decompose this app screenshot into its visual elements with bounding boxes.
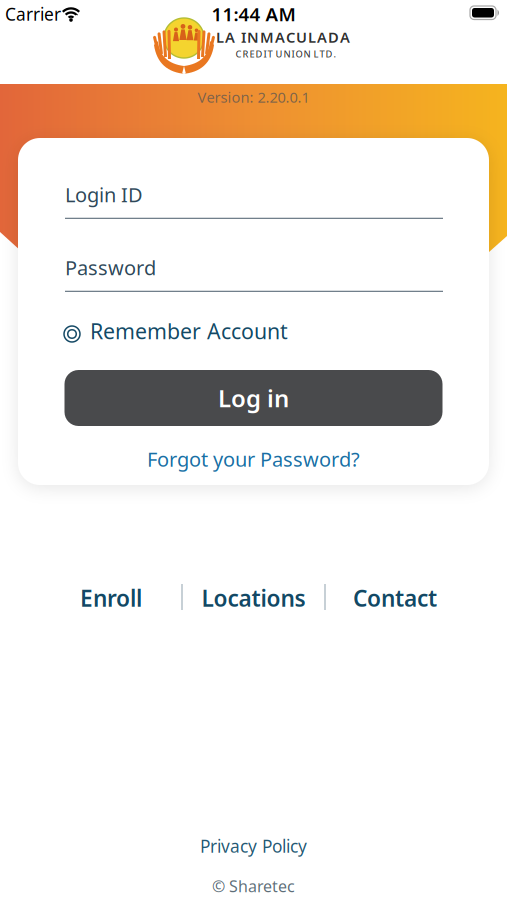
button[interactable]: Login ID: [65, 181, 443, 219]
staticText: Locations: [201, 583, 305, 613]
button[interactable]: Locations: [201, 583, 305, 613]
staticText: © Sharetec: [212, 875, 295, 897]
staticText: Remember Account: [90, 317, 288, 345]
staticText: Version: 2.20.0.1: [197, 87, 309, 107]
button[interactable]: Remember Account: [64, 317, 288, 345]
button[interactable]: Log in: [64, 370, 442, 426]
staticText: Log in: [218, 382, 289, 414]
staticText: L A I N M A C U L A D A: [216, 27, 350, 47]
staticText: Password: [65, 254, 156, 281]
button[interactable]: Enroll: [80, 583, 142, 613]
staticText: 11:44 AM: [211, 2, 295, 26]
staticText: Carrier: [5, 2, 61, 25]
staticText: C R E D I T U N I O N L T D .: [235, 48, 336, 60]
staticText: Contact: [353, 583, 437, 613]
button[interactable]: Contact: [353, 583, 437, 613]
staticText: Forgot your Password?: [147, 446, 360, 472]
button[interactable]: Privacy Policy: [200, 834, 307, 857]
staticText: Login ID: [65, 181, 143, 208]
button[interactable]: Password: [65, 254, 443, 292]
staticText: Enroll: [80, 583, 142, 613]
button[interactable]: Forgot your Password?: [147, 446, 360, 472]
staticText: Privacy Policy: [200, 834, 307, 857]
